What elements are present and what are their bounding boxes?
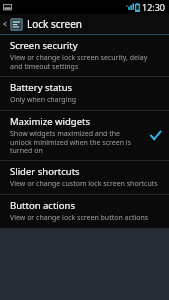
button[interactable]: Navigate up, Lock screen [0, 14, 169, 34]
staticText: View or change lock screen security, del… [10, 53, 161, 71]
button[interactable]: Maximize widgets checkbox [147, 127, 163, 143]
staticText: Show widgets maximized and the unlock mi… [10, 129, 141, 155]
staticText: Lock screen [27, 17, 83, 31]
staticText: Only when charging [10, 95, 77, 105]
staticText: Screen security [10, 39, 78, 52]
staticText: Button actions [10, 199, 75, 212]
staticText: Slider shortcuts [10, 165, 80, 178]
button[interactable]: Battery status [0, 77, 169, 110]
staticText: View or change custom lock screen shortc… [10, 179, 158, 189]
staticText: 12:30 [142, 1, 166, 13]
staticText: View or change lock screen button action… [10, 213, 149, 223]
button[interactable]: Slider shortcuts [0, 161, 169, 194]
staticText: Maximize widgets [10, 115, 90, 128]
button[interactable]: Button actions [0, 195, 169, 228]
button[interactable]: Screen security [0, 35, 169, 76]
button[interactable]: Maximize widgets [0, 111, 169, 160]
staticText: Battery status [10, 81, 73, 94]
